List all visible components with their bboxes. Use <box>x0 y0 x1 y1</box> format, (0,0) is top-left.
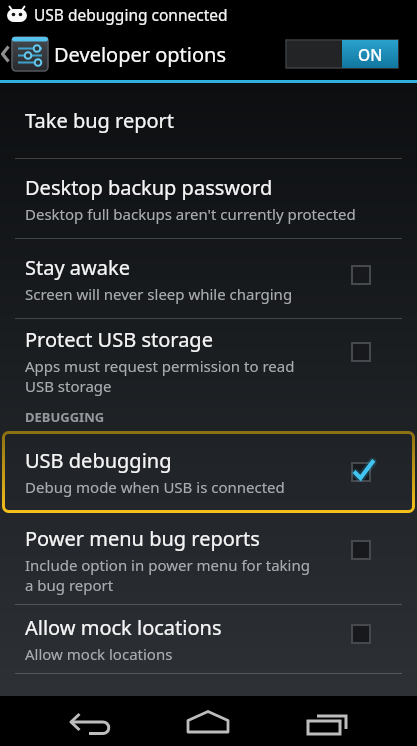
staticText: DEBUGGING <box>25 408 105 426</box>
staticText: Include option in power menu for taking … <box>25 555 310 595</box>
button[interactable]: Take bug report <box>0 83 417 158</box>
button[interactable]: Allow mock locations <box>0 605 417 673</box>
staticText: Allow mock locations <box>25 644 173 664</box>
staticText: Allow mock locations <box>25 614 222 641</box>
staticText: Desktop full backups aren't currently pr… <box>25 204 356 224</box>
staticText: Developer options <box>54 41 227 68</box>
staticText: USB debugging connected <box>34 4 228 25</box>
button[interactable]: Protect USB storage <box>0 319 417 403</box>
button[interactable] <box>184 711 232 743</box>
button[interactable]: Desktop backup password <box>0 159 417 238</box>
staticText: Desktop backup password <box>25 174 273 201</box>
staticText: Debug mode when USB is connected <box>25 477 285 497</box>
button[interactable] <box>304 710 350 738</box>
staticText: USB debugging <box>25 447 172 474</box>
button[interactable]: Stay awake <box>0 239 417 318</box>
staticText: Screen will never sleep while charging <box>25 284 293 304</box>
button[interactable]: Power menu bug reports <box>0 515 417 604</box>
staticText: ON <box>358 44 383 65</box>
staticText: Take bug report <box>25 107 175 134</box>
button[interactable]: ON <box>286 40 398 68</box>
staticText: Protect USB storage <box>25 326 213 353</box>
staticText: Apps must request permission to read USB… <box>25 356 295 396</box>
staticText: Power menu bug reports <box>25 525 260 552</box>
button[interactable] <box>64 704 116 740</box>
button[interactable]: USB debugging <box>2 431 415 513</box>
button[interactable]: Developer options <box>0 28 417 80</box>
staticText: Stay awake <box>25 254 130 281</box>
